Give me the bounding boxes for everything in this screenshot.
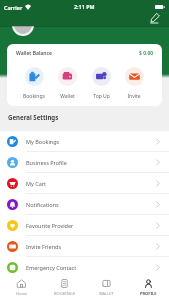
staticText: My Bookings — [26, 138, 60, 145]
staticText: Invite — [127, 93, 141, 100]
staticText: Notifications — [26, 201, 59, 208]
staticText: PROFILE — [140, 291, 157, 296]
button[interactable]: Favourite Provider — [0, 215, 169, 235]
button[interactable]: Invite Friends — [0, 236, 169, 256]
staticText: My Cart — [26, 180, 47, 187]
button[interactable]: My Cart — [0, 173, 169, 193]
button[interactable]: My Bookings — [0, 131, 169, 151]
button[interactable]: Wallet — [50, 67, 84, 100]
button[interactable]: Edit profile — [148, 11, 162, 25]
staticText: Carrier — [4, 4, 23, 11]
staticText: Favourite Provider — [26, 222, 74, 229]
button[interactable]: Top Up — [84, 67, 118, 100]
button[interactable]: WALLET — [85, 275, 127, 300]
staticText: 2:11 PM — [74, 3, 95, 10]
staticText: Top Up — [93, 93, 110, 100]
staticText: Emergency Contact — [26, 264, 77, 271]
button[interactable]: Home — [0, 275, 43, 300]
button[interactable]: Emergency Contact — [0, 257, 169, 277]
staticText: Home — [16, 291, 28, 296]
staticText: Business Profile — [26, 159, 67, 166]
button[interactable]: Bookings — [17, 67, 51, 100]
button[interactable]: Invite — [117, 67, 151, 100]
staticText: WALLET — [99, 291, 114, 296]
button[interactable]: PROFILE — [127, 275, 169, 300]
staticText: General Settings — [8, 113, 59, 121]
staticText: Invite Friends — [26, 243, 62, 250]
button[interactable]: BOOKINGS — [43, 275, 85, 300]
button[interactable]: Notifications — [0, 194, 169, 214]
staticText: Wallet Balance — [16, 50, 52, 57]
staticText: Wallet — [60, 93, 75, 100]
staticText: BOOKINGS — [54, 291, 75, 296]
staticText: $ 0.00 — [139, 50, 154, 57]
staticText: Bookings — [23, 93, 45, 100]
button[interactable]: Business Profile — [0, 152, 169, 172]
